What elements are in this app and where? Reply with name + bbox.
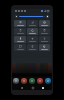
- button[interactable]: Recents: [41, 86, 44, 89]
- button[interactable]: Cast: [14, 44, 26, 51]
- button[interactable]: Brightness: [14, 14, 50, 18]
- button[interactable]: Location: [39, 36, 50, 43]
- button[interactable]: Home: [31, 86, 34, 89]
- button[interactable]: App 5: [45, 78, 51, 84]
- button[interactable]: Back: [20, 86, 23, 89]
- button[interactable]: Night: [39, 44, 50, 51]
- button[interactable]: Wi‑Fi: [14, 20, 26, 27]
- button[interactable]: Light: [14, 28, 26, 35]
- button[interactable]: App 4: [37, 78, 43, 84]
- button[interactable]: Battery: [39, 28, 50, 35]
- button[interactable]: App 3: [29, 78, 35, 84]
- button[interactable]: DND: [39, 20, 50, 27]
- button[interactable]: App 2: [21, 78, 27, 84]
- button[interactable]: Hotspot: [27, 44, 38, 51]
- button[interactable]: Airplane: [27, 36, 38, 43]
- button[interactable]: App 1: [13, 78, 19, 84]
- button[interactable]: Rotate: [27, 28, 38, 35]
- button[interactable]: Bluetooth: [14, 36, 26, 43]
- button[interactable]: Mobile: [27, 20, 38, 27]
